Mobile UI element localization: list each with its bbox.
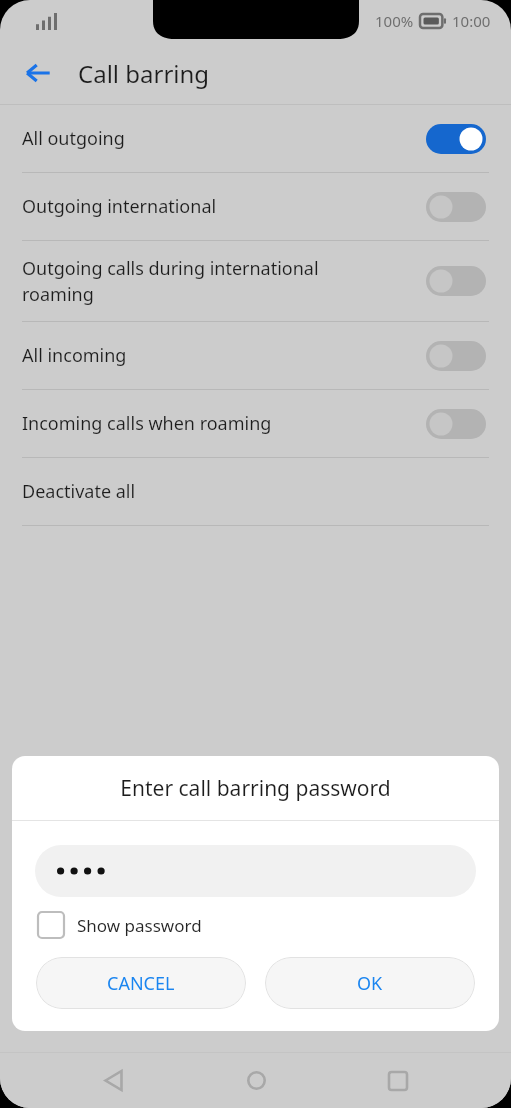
button[interactable]: OK <box>265 957 475 1009</box>
button[interactable]: Show password <box>38 912 202 938</box>
staticText: CANCEL <box>107 971 175 996</box>
staticText: All outgoing <box>22 126 414 151</box>
staticText: OK <box>357 971 383 996</box>
button[interactable]: Recent apps <box>368 1053 428 1108</box>
button[interactable]: Outgoing international <box>0 173 511 240</box>
button[interactable] <box>35 845 476 897</box>
button[interactable]: Back <box>83 1053 143 1108</box>
button[interactable]: Back <box>14 49 62 97</box>
button[interactable]: All outgoing <box>0 105 511 172</box>
staticText: Call barring <box>78 57 210 90</box>
staticText: Incoming calls when roaming <box>22 411 414 436</box>
staticText: Enter call barring password <box>120 774 391 803</box>
other: Battery full <box>420 14 446 28</box>
button[interactable]: All incoming <box>0 322 511 389</box>
button[interactable]: Incoming calls when roaming <box>0 390 511 457</box>
staticText: Deactivate all <box>22 479 136 504</box>
staticText: Outgoing calls during international roam… <box>22 256 414 306</box>
button[interactable]: Outgoing calls during international roam… <box>0 241 511 321</box>
staticText: All incoming <box>22 343 414 368</box>
button[interactable]: Deactivate all <box>0 458 511 525</box>
staticText: Outgoing international <box>22 194 414 219</box>
button[interactable]: Home <box>226 1053 286 1108</box>
button[interactable]: CANCEL <box>36 957 246 1009</box>
staticText: Show password <box>77 914 202 937</box>
staticText: 100% <box>375 11 414 31</box>
staticText: 10:00 <box>452 11 491 31</box>
other: Signal strength <box>36 13 57 30</box>
